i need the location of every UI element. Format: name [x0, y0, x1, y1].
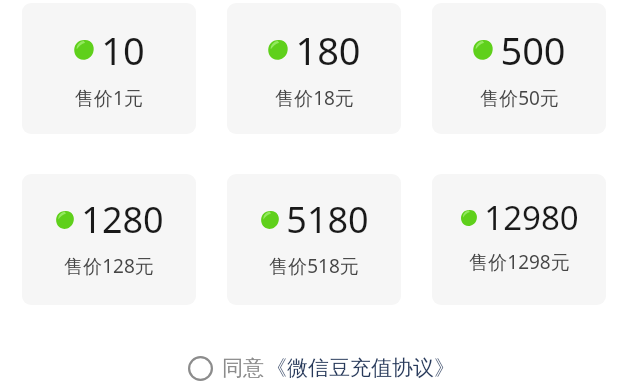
staticText: 售价18元	[275, 85, 354, 111]
button[interactable]: 10	[22, 3, 196, 134]
staticText: 180	[295, 24, 361, 76]
staticText: 10	[101, 24, 145, 76]
staticText: 售价518元	[269, 253, 359, 279]
button[interactable]: 500	[432, 3, 606, 134]
staticText: 12980	[484, 195, 579, 240]
button[interactable]: 1280	[22, 174, 196, 305]
button[interactable]: 12980	[432, 174, 606, 305]
staticText: 5180	[286, 195, 369, 244]
staticText: 同意	[222, 355, 264, 381]
button[interactable]: 180	[227, 3, 401, 134]
staticText: 1280	[81, 195, 164, 244]
button[interactable]: Agree to agreement checkbox	[183, 352, 459, 384]
staticText: 售价1298元	[469, 249, 570, 275]
other: Agree to agreement checkbox	[187, 355, 213, 381]
staticText: 《微信豆充值协议》	[266, 355, 455, 381]
staticText: 500	[500, 24, 566, 76]
staticText: 售价1元	[75, 85, 143, 111]
staticText: 售价128元	[64, 253, 154, 279]
staticText: 售价50元	[480, 85, 559, 111]
button[interactable]: 5180	[227, 174, 401, 305]
